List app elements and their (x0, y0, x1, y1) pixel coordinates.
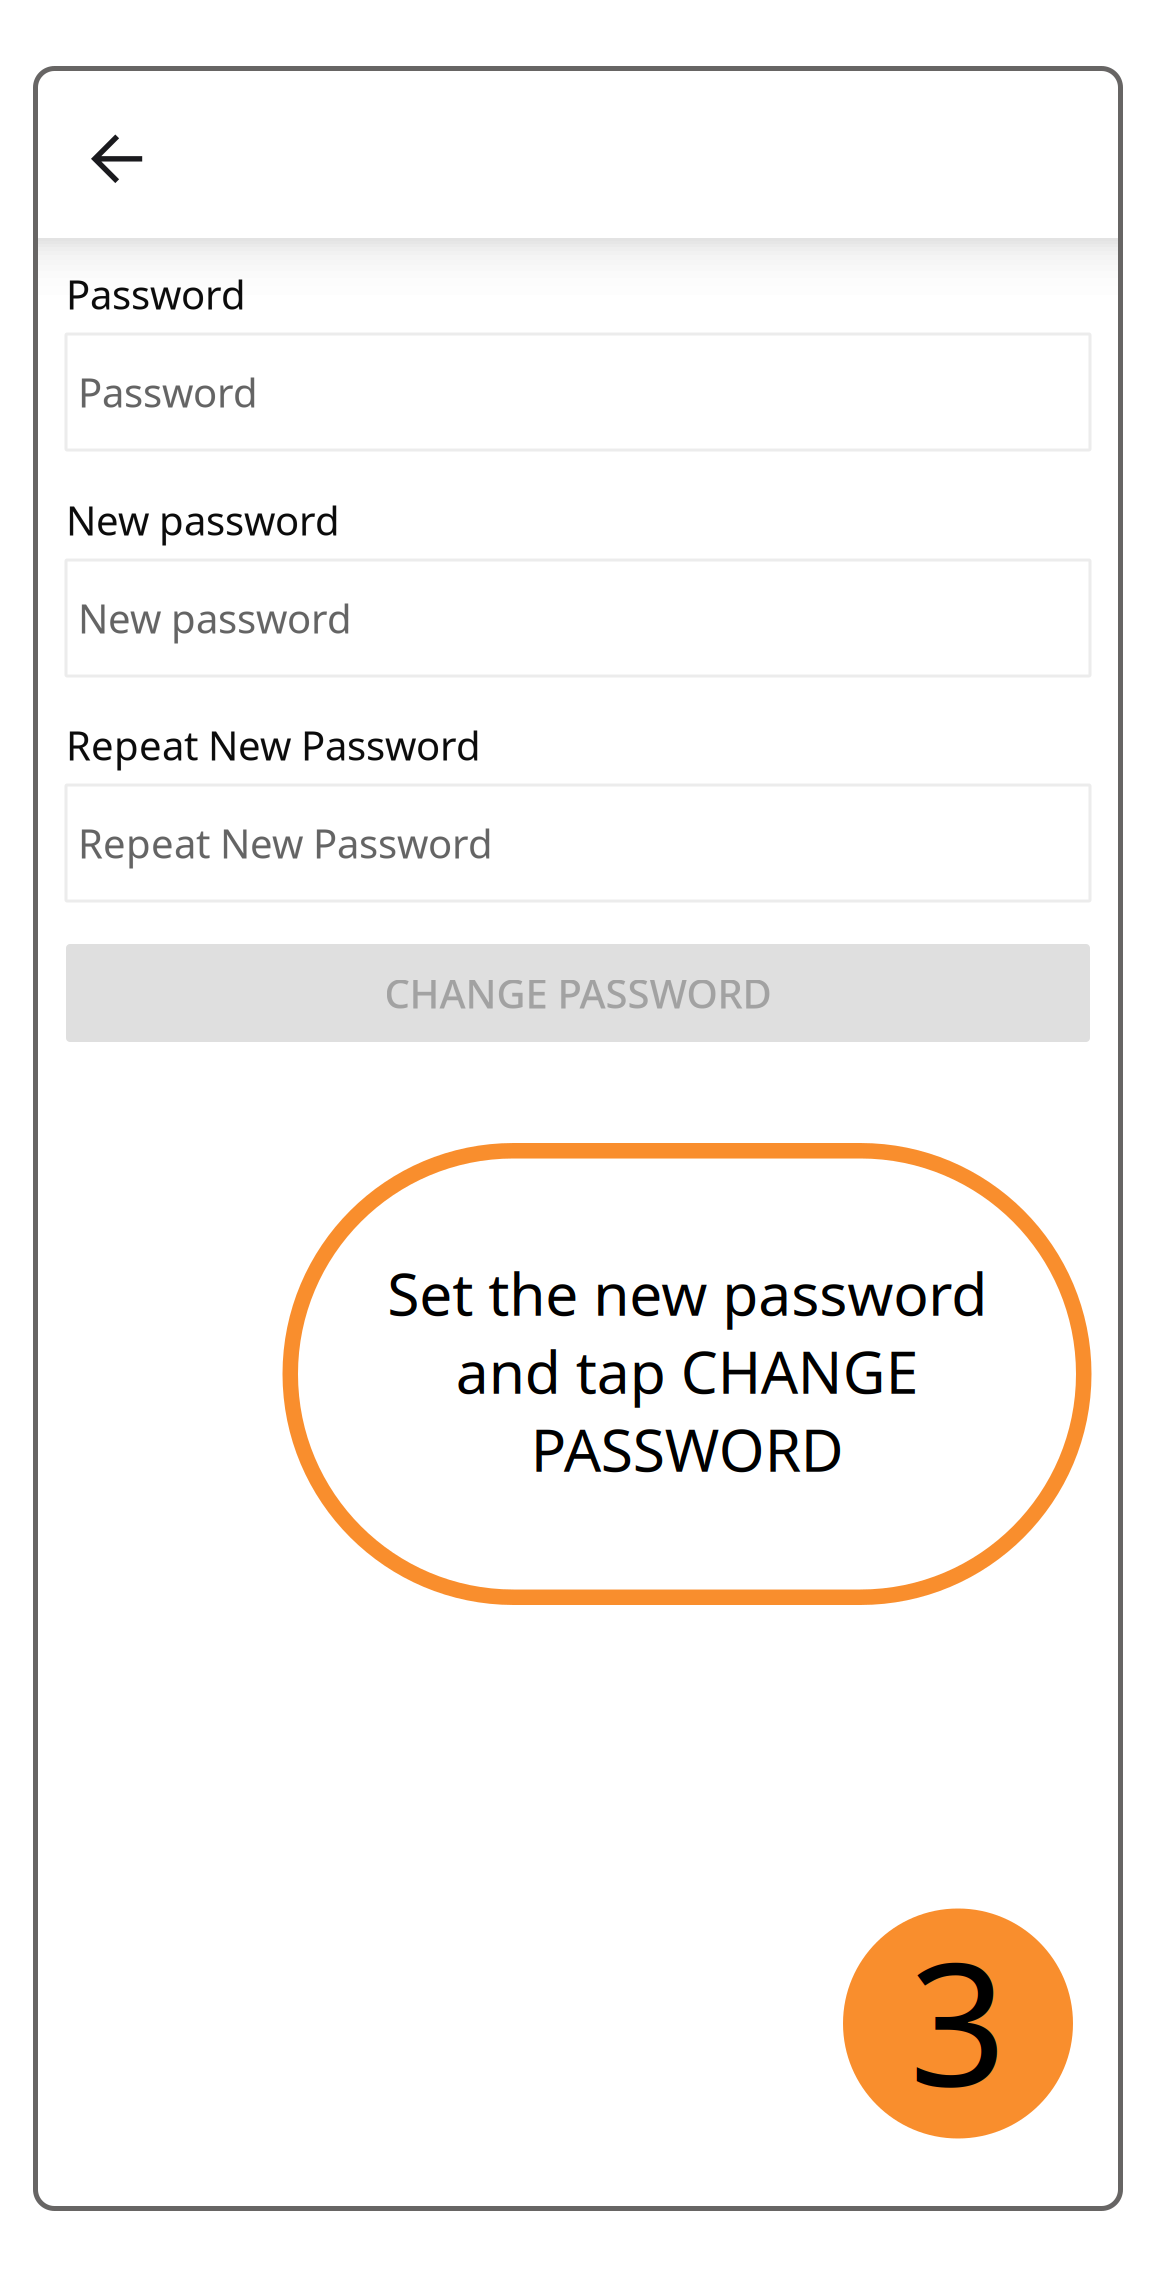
staticText: Set the new password and tap CHANGE PASS… (387, 1254, 987, 1488)
staticText: 3 (909, 1906, 1007, 2133)
staticText: Password (78, 365, 258, 418)
button[interactable]: CHANGE PASSWORD (66, 944, 1090, 1042)
staticText: New password (66, 493, 340, 546)
staticText: CHANGE PASSWORD (384, 966, 771, 1019)
staticText: Repeat New Password (78, 816, 493, 869)
staticText: Password (66, 267, 246, 320)
staticText: New password (78, 591, 352, 644)
button[interactable]: Back (44, 93, 194, 225)
staticText: Repeat New Password (66, 718, 481, 771)
